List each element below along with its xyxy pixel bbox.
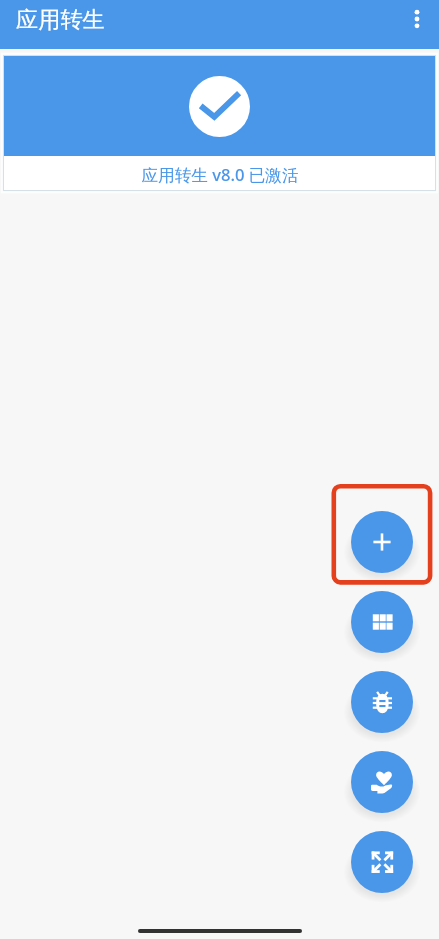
button[interactable]: Add bbox=[351, 511, 413, 573]
button[interactable]: Fullscreen bbox=[351, 831, 413, 893]
button[interactable]: Bug report bbox=[351, 671, 413, 733]
staticText: 应用转生 v8.0 已激活 bbox=[141, 163, 299, 186]
button[interactable]: More options bbox=[397, 0, 437, 39]
button[interactable]: Donate bbox=[351, 751, 413, 813]
button[interactable]: Apps bbox=[351, 591, 413, 653]
staticText: 应用转生 bbox=[16, 6, 105, 34]
